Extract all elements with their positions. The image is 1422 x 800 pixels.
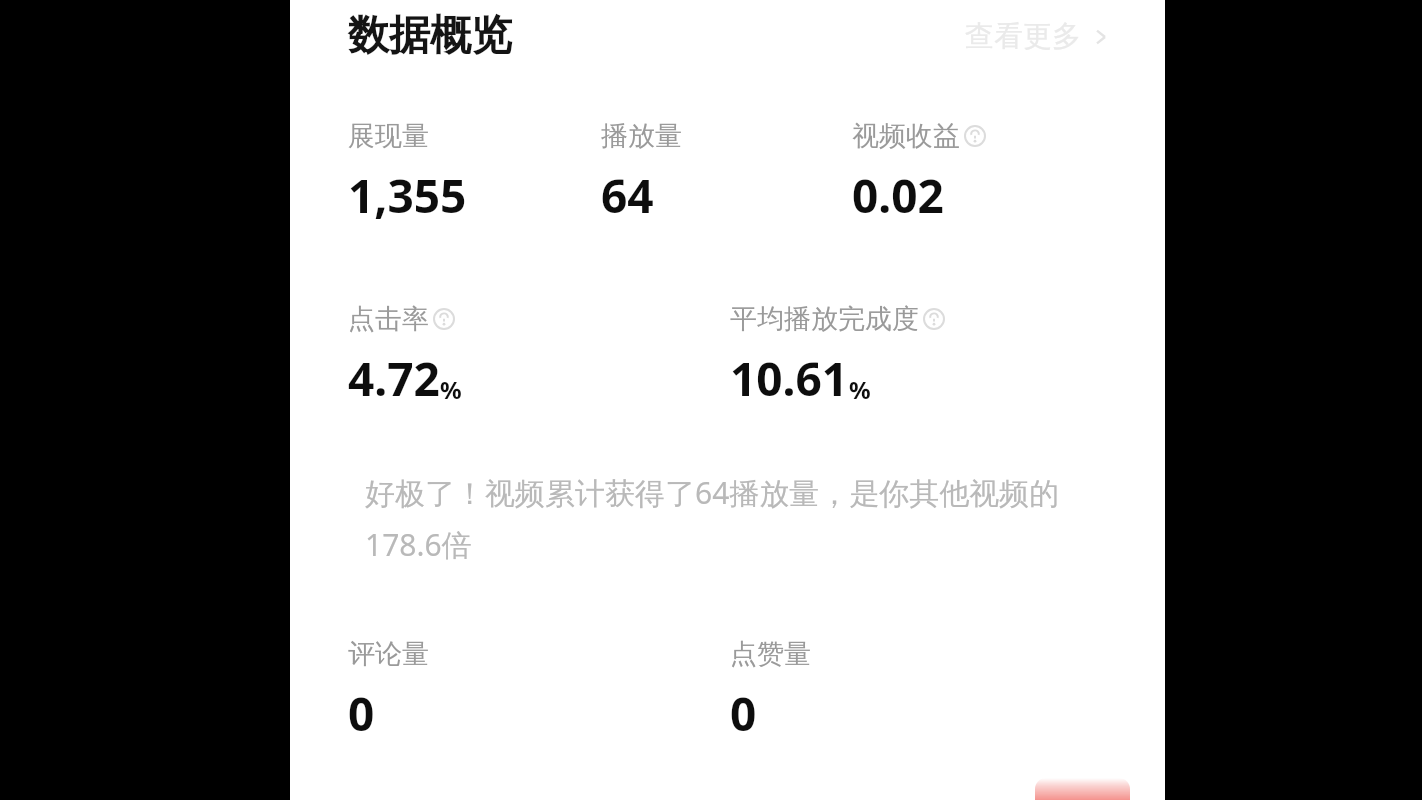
- button[interactable]: 平均播放完成度: [730, 302, 945, 410]
- staticText: 0.02: [852, 164, 944, 227]
- staticText: %: [440, 373, 462, 406]
- staticText: 点击率: [348, 302, 429, 336]
- staticText: 视频收益: [852, 119, 960, 153]
- staticText: 点赞量: [730, 637, 811, 671]
- staticText: 评论量: [348, 637, 429, 671]
- button[interactable]: 点击率: [348, 302, 462, 410]
- button[interactable]: 查看更多: [965, 18, 1111, 55]
- staticText: %: [849, 373, 871, 406]
- other: View more: [1091, 27, 1111, 47]
- staticText: 0: [730, 682, 757, 745]
- staticText: 64: [601, 164, 654, 227]
- staticText: 展现量: [348, 119, 429, 153]
- button[interactable]: 播放量: [601, 119, 682, 227]
- button[interactable]: Action button: [1035, 778, 1130, 800]
- staticText: 查看更多: [965, 18, 1081, 55]
- button[interactable]: 评论量: [348, 637, 429, 745]
- button[interactable]: 视频收益: [852, 119, 986, 227]
- button[interactable]: 点赞量: [730, 637, 811, 745]
- staticText: 0: [348, 682, 375, 745]
- staticText: 平均播放完成度: [730, 302, 919, 336]
- staticText: 数据概览: [348, 10, 512, 62]
- staticText: 1,355: [348, 164, 467, 227]
- staticText: 播放量: [601, 119, 682, 153]
- staticText: 10.61: [730, 347, 849, 410]
- button[interactable]: 展现量: [348, 119, 467, 227]
- staticText: 4.72: [348, 347, 440, 410]
- staticText: 好极了！视频累计获得了64播放量，是你其他视频的178.6倍: [365, 472, 1097, 565]
